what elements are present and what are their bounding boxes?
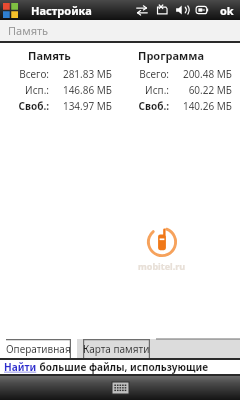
staticText: 134.97 МБ [53,99,112,113]
staticText: Всего: [120,67,169,81]
button[interactable]: No SIM [155,3,169,17]
button[interactable]: Volume [175,3,189,17]
staticText: Найти [4,360,37,374]
button[interactable]: Data connection [135,3,149,17]
staticText: Исп.: [120,83,169,97]
staticText: Карта памяти [83,342,150,356]
button[interactable]: Start [3,3,18,18]
button[interactable]: Карта памяти [77,339,156,358]
staticText: 281.83 МБ [53,67,112,81]
staticText: Своб.: [0,99,49,113]
staticText: mobitel.ru [138,260,186,272]
button[interactable]: Найти [0,360,240,374]
staticText: Память [8,23,49,38]
staticText: Своб.: [120,99,169,113]
button[interactable]: Battery [195,3,209,17]
staticText: Всего: [0,67,49,81]
staticText: Настройка [31,3,92,18]
staticText: 200.48 МБ [173,67,232,81]
button[interactable]: ok [216,1,238,19]
staticText: ok [220,3,234,18]
staticText: 60.22 МБ [173,83,232,97]
staticText: 146.86 МБ [53,83,112,97]
staticText: большие файлы, использующие память. [37,360,240,374]
button[interactable]: Оперативная [0,339,77,358]
staticText: Исп.: [0,83,49,97]
button[interactable]: Keyboard [112,382,129,394]
staticText: Оперативная [6,342,71,356]
staticText: Программа [138,48,204,63]
staticText: Память [28,48,71,63]
staticText: 140.26 МБ [173,99,232,113]
